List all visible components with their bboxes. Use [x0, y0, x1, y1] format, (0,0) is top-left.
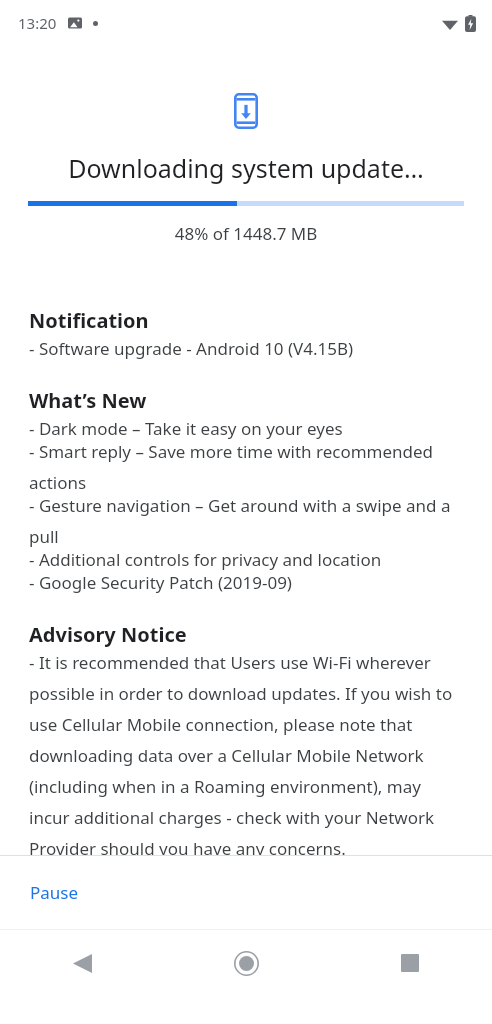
staticText: Notification — [29, 307, 149, 334]
staticText: Downloading system update… — [16, 151, 476, 185]
button[interactable]: Home — [214, 931, 278, 995]
staticText: Advisory Notice — [29, 621, 187, 648]
staticText: 13:20 — [18, 13, 57, 33]
staticText: - Software upgrade - Android 10 (V4.15B) — [29, 337, 354, 360]
staticText: What’s New — [29, 387, 147, 414]
button[interactable]: Recent apps — [378, 931, 442, 995]
staticText: - It is recommended that Users use Wi-Fi… — [29, 651, 463, 855]
staticText: 48% of 1448.7 MB — [0, 222, 492, 245]
staticText: Pause — [30, 881, 79, 904]
staticText: - Google Security Patch (2019-09) — [29, 571, 292, 594]
button[interactable]: Pause — [18, 873, 91, 912]
staticText: - Smart reply – Save more time with reco… — [29, 440, 463, 494]
staticText: - Dark mode – Take it easy on your eyes — [29, 417, 343, 440]
staticText: - Gesture navigation – Get around with a… — [29, 494, 463, 548]
staticText: - Additional controls for privacy and lo… — [29, 548, 382, 571]
button[interactable]: Back — [50, 931, 114, 995]
